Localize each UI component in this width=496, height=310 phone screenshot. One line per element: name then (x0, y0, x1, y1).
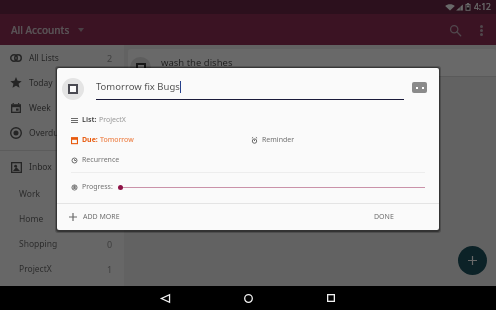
staticText: wash the dishes (161, 56, 233, 69)
staticText: Tomorrow (100, 135, 134, 145)
button[interactable]: More options (468, 17, 494, 43)
staticText: Reminder (262, 135, 295, 145)
staticText: 0 (107, 238, 113, 250)
staticText: 4:12 (474, 1, 491, 13)
button[interactable]: Complete task (62, 78, 84, 100)
staticText: ProjectX (19, 263, 52, 275)
button[interactable]: Home (236, 286, 260, 310)
staticText: Due: (82, 135, 100, 145)
button[interactable]: Recurrence (71, 150, 425, 170)
button[interactable]: ADD MORE (57, 206, 132, 228)
button[interactable]: Today (0, 70, 124, 95)
button[interactable]: All Lists (0, 45, 124, 70)
button[interactable]: Inbox (0, 154, 124, 179)
button[interactable]: ProjectX (0, 256, 124, 281)
staticText: Inbox (29, 161, 52, 173)
button[interactable]: Home (0, 206, 124, 231)
button[interactable]: Add task (458, 246, 487, 275)
button[interactable]: Work (0, 181, 124, 206)
button[interactable]: wash the dishes (128, 49, 496, 76)
button[interactable]: Recents (319, 286, 343, 310)
staticText: Tomorrow fix Bugs (96, 80, 180, 93)
button[interactable]: Keyboard (412, 82, 427, 93)
staticText: Shopping (19, 238, 58, 250)
button[interactable]: Due: (71, 130, 251, 150)
staticText: 2 (107, 52, 113, 64)
staticText: Overdue (29, 127, 64, 139)
button[interactable]: Reminder (251, 130, 425, 150)
button[interactable]: Back (153, 286, 177, 310)
staticText: Progress: (82, 182, 113, 192)
staticText: Today (29, 77, 53, 89)
staticText: ProjectX (99, 115, 126, 125)
button[interactable]: All Accounts (11, 19, 84, 41)
staticText: DONE (374, 212, 394, 222)
staticText: Week (29, 102, 51, 114)
staticText: Work (19, 188, 40, 200)
button[interactable]: Shopping (0, 231, 124, 256)
staticText: Recurrence (82, 155, 120, 165)
staticText: All Lists (29, 52, 59, 64)
staticText: All Accounts (11, 23, 70, 37)
button[interactable]: DONE (360, 206, 439, 228)
staticText: 1 (107, 263, 113, 275)
staticText: List: (82, 115, 99, 125)
button[interactable]: Week (0, 95, 124, 120)
staticText: Home (19, 213, 44, 225)
staticText: ADD MORE (83, 212, 120, 222)
button[interactable]: Overdue (0, 120, 124, 145)
button[interactable]: Search (442, 17, 468, 43)
